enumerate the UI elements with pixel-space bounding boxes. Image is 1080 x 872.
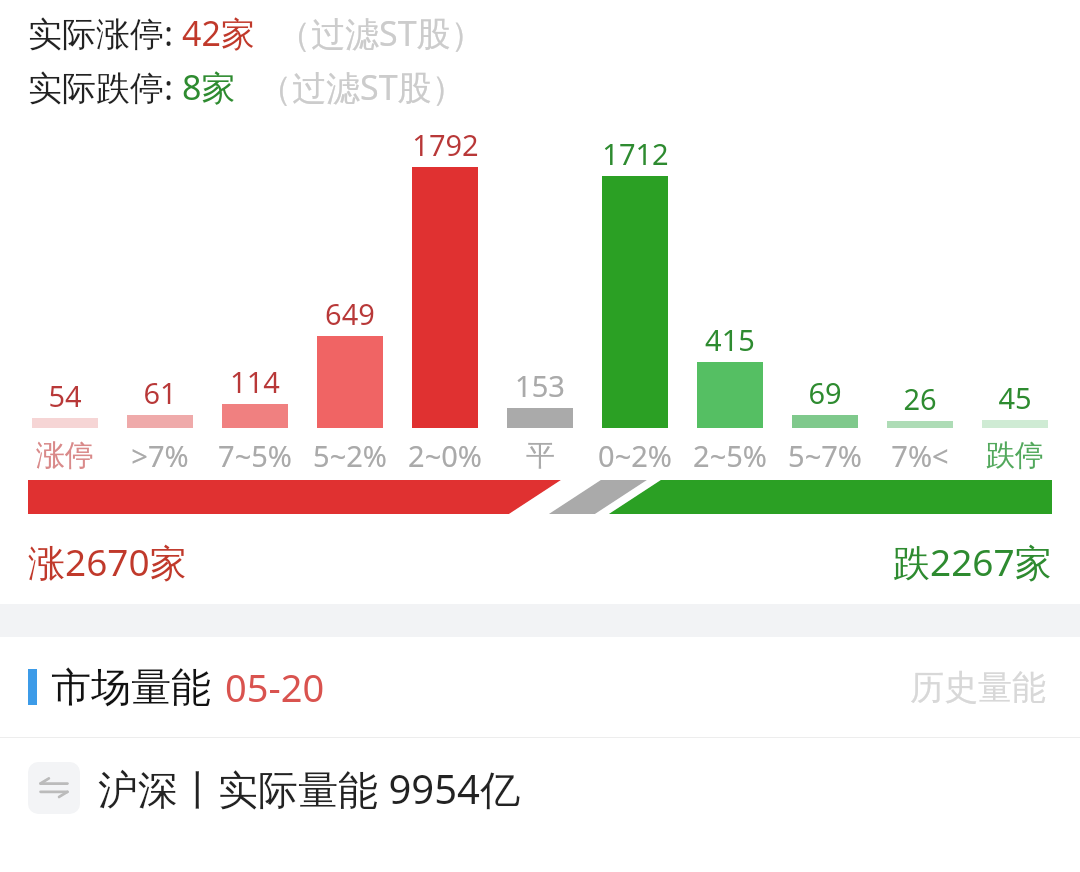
staticText: >7% [131, 436, 189, 475]
staticText: 54 [48, 376, 82, 415]
staticText: 26 [903, 379, 937, 418]
staticText: （过滤ST股） [277, 10, 485, 56]
staticText: 69 [808, 373, 842, 412]
staticText: 1712 [602, 134, 669, 173]
staticText: 42家 [182, 10, 255, 56]
staticText: 实际跌停: [28, 64, 174, 110]
other: 切换市场 [28, 762, 80, 814]
staticText: 415 [705, 320, 755, 359]
button[interactable]: 切换市场 [0, 738, 1080, 838]
staticText: 5~2% [313, 436, 387, 475]
staticText: 7%< [891, 436, 949, 475]
button[interactable]: 历史量能 [904, 660, 1052, 715]
staticText: 7~5% [218, 436, 292, 475]
staticText: 114 [230, 362, 280, 401]
staticText: 跌停 [986, 437, 1044, 474]
staticText: 5~7% [788, 436, 862, 475]
staticText: 649 [325, 294, 375, 333]
staticText: 实际涨停: [28, 10, 174, 56]
staticText: 平 [526, 437, 555, 474]
staticText: 0~2% [598, 436, 672, 475]
staticText: 2~5% [693, 436, 767, 475]
staticText: 1792 [412, 125, 479, 164]
staticText: 05-20 [225, 661, 325, 713]
staticText: 市场量能 [51, 662, 211, 712]
staticText: 涨停 [36, 437, 94, 474]
staticText: 沪深丨实际量能 9954亿 [98, 761, 520, 816]
staticText: 跌2267家 [893, 536, 1052, 587]
staticText: 45 [998, 378, 1032, 417]
staticText: 2~0% [408, 436, 482, 475]
staticText: 153 [515, 366, 565, 405]
staticText: 历史量能 [910, 666, 1046, 709]
staticText: 涨2670家 [28, 536, 187, 587]
staticText: （过滤ST股） [258, 64, 466, 110]
staticText: 61 [143, 373, 177, 412]
staticText: 8家 [182, 64, 236, 110]
